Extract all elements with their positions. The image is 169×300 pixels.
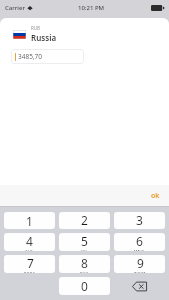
button[interactable]: 1 [4, 212, 55, 229]
button[interactable]: 6 [114, 233, 165, 251]
staticText: Carrier [5, 4, 25, 12]
button[interactable]: 5 [59, 233, 110, 251]
button[interactable]: 7 [4, 255, 55, 273]
staticText: 5 [81, 233, 88, 249]
button[interactable]: RUB [0, 18, 169, 46]
button[interactable]: 3 [114, 212, 165, 229]
staticText: 8 [81, 255, 88, 271]
button[interactable]: ok [142, 187, 169, 205]
staticText: GHI [25, 249, 34, 251]
staticText: 2 [81, 212, 88, 228]
staticText: RUB [31, 25, 41, 31]
staticText: 3485,70 [18, 52, 43, 61]
staticText: PQRS [24, 271, 36, 273]
staticText: MNO [134, 249, 145, 251]
staticText: 1 [26, 213, 33, 229]
staticText: ok [151, 191, 160, 201]
button[interactable]: 3485,70 [11, 49, 84, 64]
button[interactable]: Delete [114, 277, 165, 295]
button[interactable]: 8 [59, 255, 110, 273]
button[interactable]: 2 [59, 212, 110, 229]
button[interactable]: 0 [59, 277, 110, 295]
button[interactable]: 9 [114, 255, 165, 273]
button[interactable]: 4 [4, 233, 55, 251]
staticText: 0 [81, 278, 88, 294]
staticText: 10:21 PM [78, 4, 105, 12]
staticText: TUV [80, 271, 89, 273]
staticText: WXYZ [134, 271, 146, 273]
staticText: JKL [81, 249, 88, 251]
staticText: 7 [27, 255, 34, 271]
staticText: 3 [136, 212, 143, 228]
staticText: 4 [26, 233, 33, 249]
staticText: Russia [31, 32, 57, 43]
staticText: 6 [136, 233, 143, 249]
staticText: 9 [137, 255, 144, 271]
